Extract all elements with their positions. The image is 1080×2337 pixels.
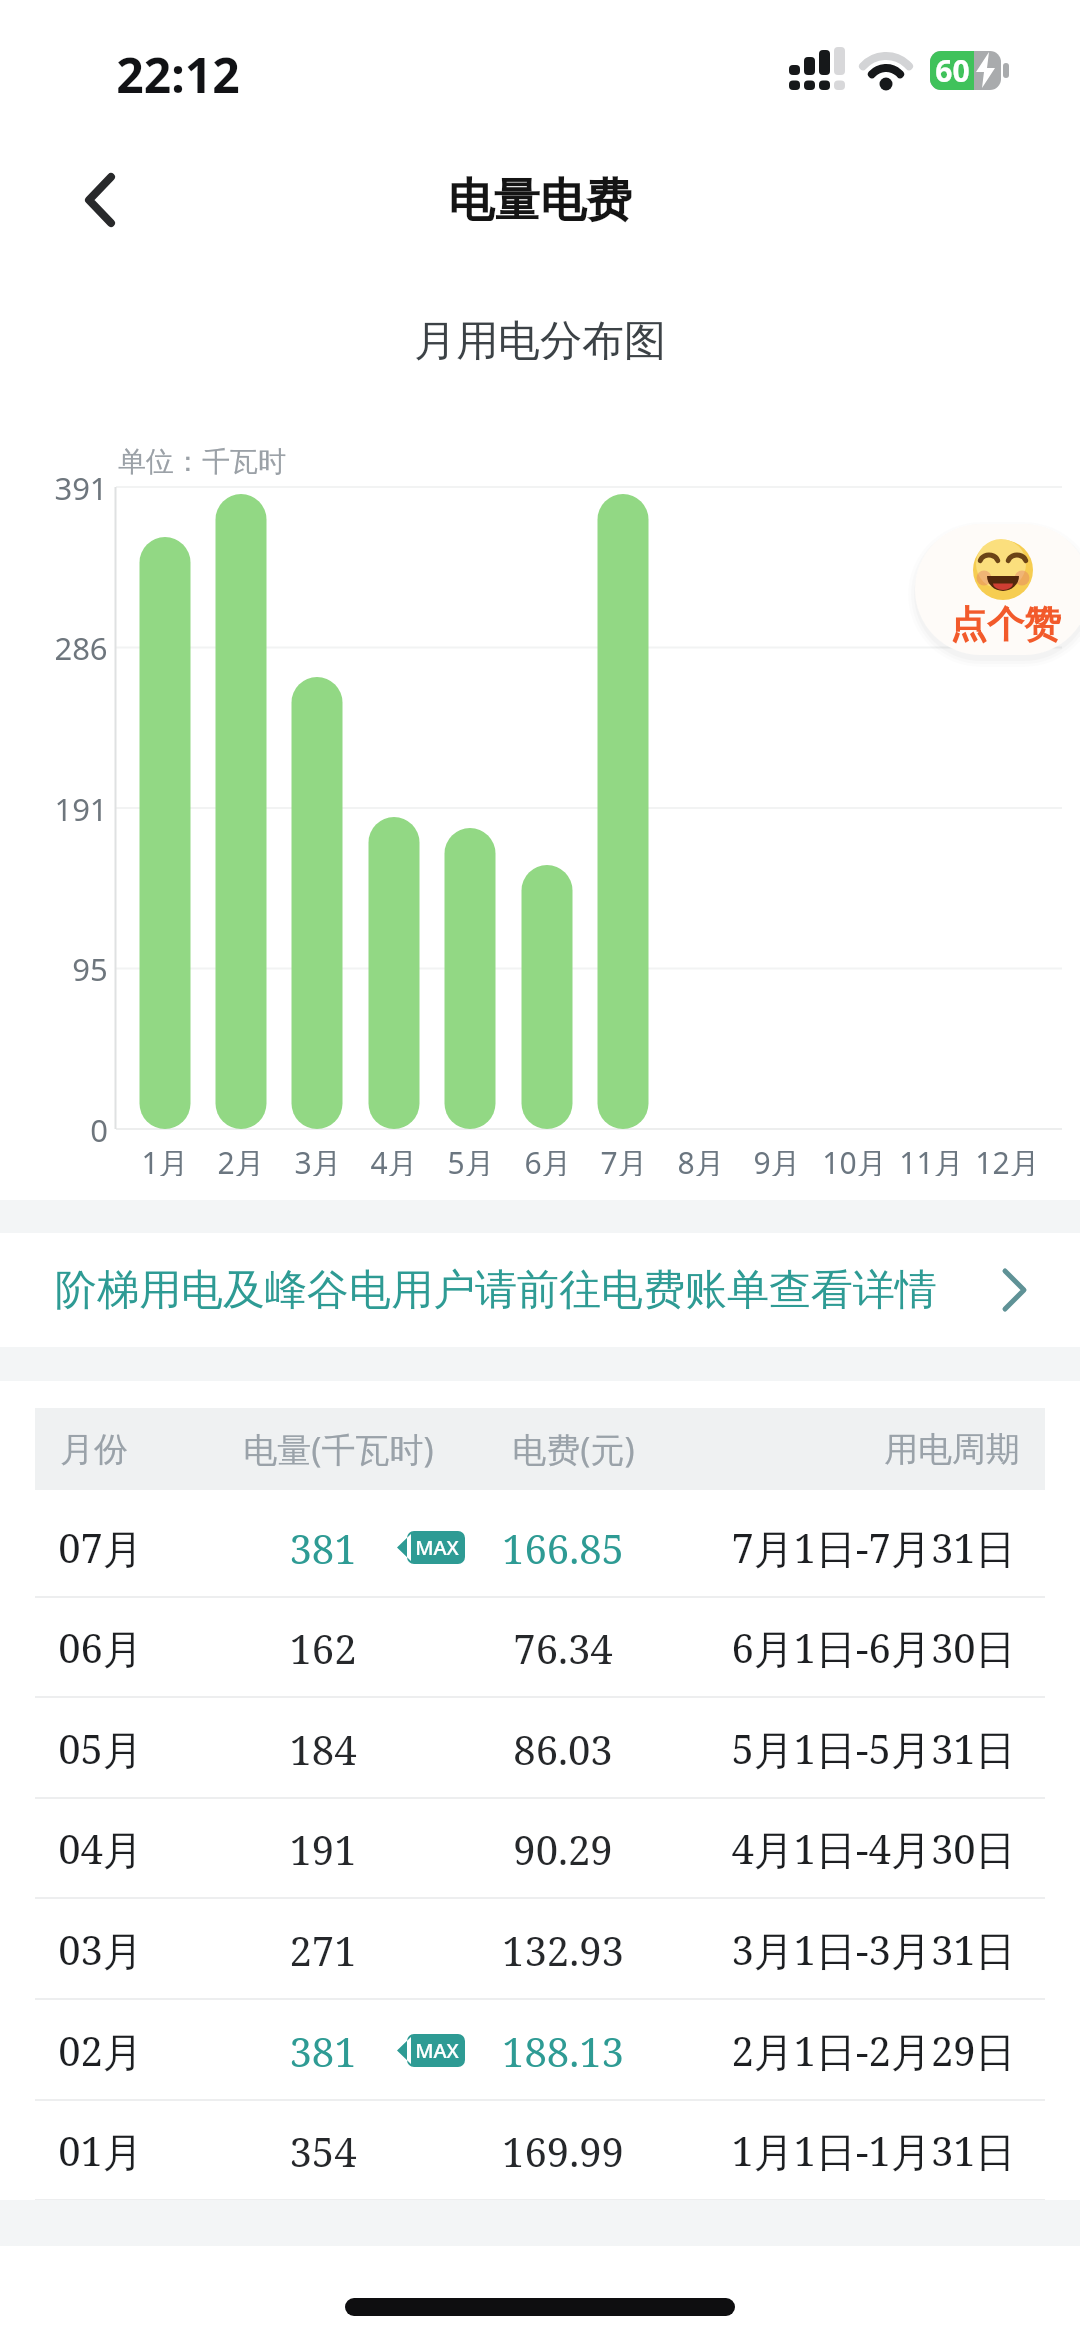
staticText: 166.85 bbox=[502, 1521, 624, 1575]
staticText: 5月 bbox=[447, 1142, 495, 1176]
staticText: 188.13 bbox=[502, 2024, 624, 2078]
staticText: 381 bbox=[289, 2024, 357, 2078]
staticText: 5月1日-5月31日 bbox=[731, 1721, 1016, 1776]
button[interactable]: 04月 bbox=[0, 1798, 1080, 1899]
staticText: 02月 bbox=[58, 2023, 143, 2078]
staticText: 391 bbox=[54, 467, 108, 507]
button[interactable]: 06月 bbox=[0, 1597, 1080, 1698]
staticText: 10月 bbox=[822, 1142, 887, 1176]
staticText: MAX bbox=[415, 2037, 459, 2064]
staticText: 11月 bbox=[899, 1142, 964, 1176]
staticText: 月份 bbox=[60, 1428, 128, 1471]
button[interactable] bbox=[915, 524, 1080, 655]
staticText: 95 bbox=[72, 948, 108, 988]
staticText: 1月1日-1月31日 bbox=[731, 2123, 1016, 2178]
staticText: 90.29 bbox=[513, 1822, 613, 1876]
staticText: 76.34 bbox=[513, 1621, 613, 1675]
staticText: 12月 bbox=[975, 1142, 1040, 1176]
staticText: 2月1日-2月29日 bbox=[731, 2023, 1016, 2078]
staticText: 电量(千瓦时) bbox=[243, 1426, 434, 1472]
staticText: 7月 bbox=[600, 1142, 648, 1176]
staticText: 191 bbox=[289, 1822, 357, 1876]
button[interactable]: 01月 bbox=[0, 2100, 1080, 2201]
staticText: 162 bbox=[289, 1621, 357, 1675]
staticText: 04月 bbox=[58, 1821, 143, 1876]
button[interactable]: 阶梯用电及峰谷电用户请前往电费账单查看详情 bbox=[0, 1233, 1080, 1347]
staticText: 用电周期 bbox=[884, 1428, 1020, 1471]
staticText: 月用电分布图 bbox=[414, 315, 666, 368]
staticText: 169.99 bbox=[502, 2124, 624, 2178]
staticText: 271 bbox=[289, 1923, 357, 1977]
staticText: 191 bbox=[54, 788, 108, 828]
staticText: 03月 bbox=[58, 1922, 143, 1977]
staticText: 22:12 bbox=[116, 42, 240, 96]
button[interactable]: 03月 bbox=[0, 1899, 1080, 2000]
staticText: 2月 bbox=[217, 1142, 265, 1176]
staticText: 6月 bbox=[524, 1142, 572, 1176]
staticText: 3月 bbox=[294, 1142, 342, 1176]
staticText: 4月 bbox=[370, 1142, 418, 1176]
button[interactable]: 07月 bbox=[0, 1497, 1080, 1598]
staticText: 06月 bbox=[58, 1620, 143, 1675]
staticText: 电量电费 bbox=[448, 172, 632, 228]
staticText: 05月 bbox=[58, 1721, 143, 1776]
staticText: 132.93 bbox=[502, 1923, 624, 1977]
staticText: 电费(元) bbox=[512, 1426, 635, 1472]
button[interactable] bbox=[60, 160, 140, 240]
staticText: 86.03 bbox=[513, 1722, 613, 1776]
staticText: 4月1日-4月30日 bbox=[731, 1821, 1016, 1876]
staticText: 9月 bbox=[753, 1142, 801, 1176]
staticText: 60 bbox=[935, 50, 970, 91]
staticText: 381 bbox=[289, 1521, 357, 1575]
button[interactable]: 02月 bbox=[0, 2000, 1080, 2101]
staticText: 184 bbox=[289, 1722, 357, 1776]
staticText: 8月 bbox=[677, 1142, 725, 1176]
staticText: 07月 bbox=[58, 1520, 143, 1575]
staticText: 354 bbox=[289, 2124, 357, 2178]
staticText: 286 bbox=[54, 627, 108, 667]
button[interactable]: 05月 bbox=[0, 1698, 1080, 1799]
staticText: 7月1日-7月31日 bbox=[731, 1520, 1016, 1575]
staticText: 3月1日-3月31日 bbox=[731, 1922, 1016, 1977]
staticText: 单位：千瓦时 bbox=[118, 444, 286, 478]
staticText: 6月1日-6月30日 bbox=[731, 1620, 1016, 1675]
staticText: 0 bbox=[90, 1109, 108, 1149]
staticText: 01月 bbox=[58, 2123, 143, 2178]
staticText: MAX bbox=[415, 1534, 459, 1561]
staticText: 1月 bbox=[141, 1142, 189, 1176]
staticText: 阶梯用电及峰谷电用户请前往电费账单查看详情 bbox=[55, 1264, 937, 1317]
staticText: 点个赞 bbox=[950, 601, 1061, 645]
